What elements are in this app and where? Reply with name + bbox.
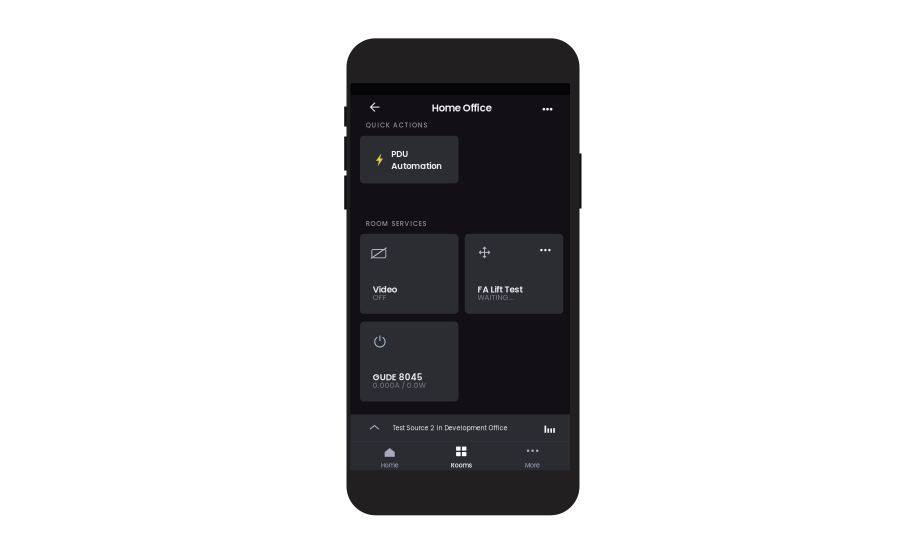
- staticText: More: [525, 461, 540, 470]
- staticText: Home: [381, 461, 399, 470]
- button[interactable]: Test Source 2 in Development Office: [350, 414, 570, 441]
- button[interactable]: GUDE 8045: [360, 322, 458, 402]
- button[interactable]: Video: [360, 234, 458, 314]
- staticText: OFF: [373, 292, 387, 303]
- button[interactable]: Rooms: [424, 441, 497, 470]
- button[interactable]: PDU Automation: [360, 136, 458, 183]
- staticText: FA Lift Test: [477, 283, 522, 296]
- staticText: Home Office: [432, 101, 492, 115]
- button[interactable]: More options: [533, 98, 561, 120]
- button[interactable]: Home: [350, 441, 424, 470]
- staticText: QUICK ACTIONS: [366, 120, 427, 130]
- staticText: Rooms: [451, 461, 472, 470]
- staticText: Video: [373, 283, 398, 296]
- button[interactable]: Back: [361, 96, 389, 118]
- button[interactable]: FA Lift Test: [465, 234, 563, 314]
- button[interactable]: More: [497, 441, 570, 470]
- staticText: Test Source 2 in Development Office: [393, 424, 508, 432]
- staticText: PDU Automation: [391, 148, 442, 172]
- staticText: ROOM SERVICES: [366, 219, 426, 228]
- staticText: WAITING...: [477, 292, 514, 303]
- staticText: GUDE 8045: [373, 371, 423, 383]
- staticText: 0.000A / 0.0W: [373, 380, 426, 390]
